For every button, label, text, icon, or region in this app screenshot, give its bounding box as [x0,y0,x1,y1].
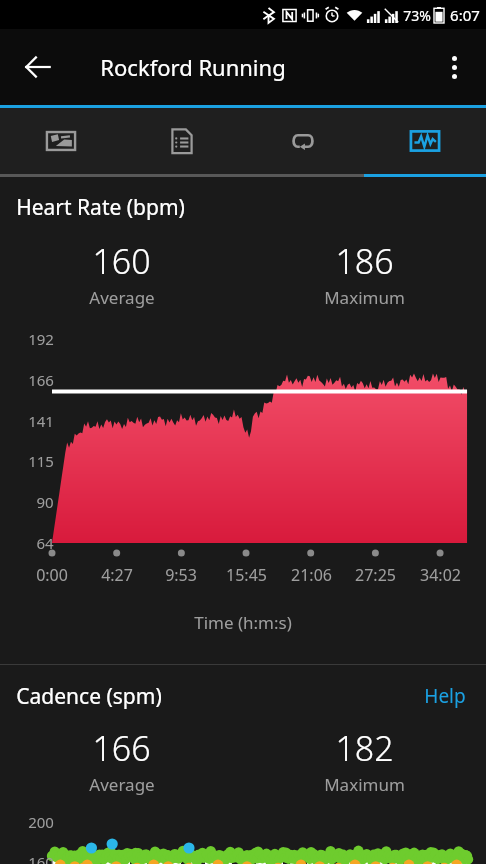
staticText: 64 [36,533,54,553]
staticText: Time (h:m:s) [194,611,292,634]
button[interactable]: Back [12,41,64,93]
button[interactable]: Laps [242,108,364,174]
staticText: 34:02 [420,564,461,586]
staticText: 90 [36,492,54,512]
staticText: 27:25 [355,564,396,586]
button[interactable]: Map [0,108,121,174]
staticText: Maximum [324,286,405,309]
staticText: Average [89,286,155,309]
button[interactable]: Charts [364,108,486,174]
staticText: Help [424,683,466,709]
button[interactable]: Details [121,108,242,174]
staticText: 166 [92,725,151,771]
staticText: 4:27 [101,564,133,586]
staticText: Heart Rate (bpm) [16,193,185,222]
staticText: 21:06 [291,564,332,586]
staticText: 115 [28,451,54,471]
staticText: 9:53 [165,564,197,586]
staticText: 6:07 [450,5,480,25]
staticText: 160 [28,852,54,864]
button[interactable]: Help [420,681,470,711]
staticText: Cadence (spm) [16,682,162,711]
staticText: 73% [403,6,431,25]
staticText: 192 [28,329,54,349]
staticText: Maximum [324,773,405,796]
staticText: 166 [28,370,54,390]
staticText: 186 [335,238,394,284]
staticText: Rockford Running [100,52,286,82]
staticText: 141 [28,411,54,431]
staticText: Average [89,773,155,796]
button[interactable]: More options [430,43,478,91]
staticText: 0:00 [36,564,68,586]
staticText: 200 [28,812,54,832]
staticText: 160 [92,238,151,284]
staticText: 182 [335,725,394,771]
staticText: 15:45 [226,564,267,586]
